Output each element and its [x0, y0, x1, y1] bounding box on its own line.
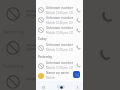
button[interactable]: Name surname	[36, 70, 83, 81]
other: Call back	[76, 8, 81, 13]
button[interactable]: Contacts	[70, 81, 84, 90]
staticText: Mobile 12:05 pm (2)	[46, 48, 73, 52]
staticText: Name surname	[46, 71, 70, 75]
staticText: Yesterday	[38, 55, 53, 59]
other: Call back	[76, 28, 81, 33]
other: Call back	[76, 45, 81, 50]
other: Call back	[76, 18, 81, 23]
button[interactable]: Unknown number	[36, 25, 83, 35]
button[interactable]: Dial pad	[73, 71, 80, 78]
staticText: Yesterday	[3, 63, 25, 69]
button[interactable]: Favourites	[36, 81, 50, 90]
staticText: Mobile 12:05 pm (2)	[46, 66, 73, 70]
other: Call back	[76, 63, 81, 68]
button[interactable]: Recents	[54, 81, 68, 90]
staticText: Mobile 12:05 pm (2)	[46, 31, 73, 35]
staticText: Unknown number	[46, 26, 74, 30]
staticText: Unknown number	[46, 61, 74, 65]
staticText: Today	[38, 37, 47, 41]
button[interactable]: Unknown number	[36, 15, 83, 25]
staticText: Mobile 12:05 pm (2)	[46, 11, 73, 15]
staticText: Mobile 12:05 pm (2)	[46, 21, 73, 25]
staticText: Unknown number	[46, 43, 74, 47]
staticText: Unknown number	[46, 16, 74, 20]
staticText: Yesterday	[3, 29, 25, 35]
staticText: Mobile	[46, 76, 55, 80]
button[interactable]: Unknown number	[36, 43, 83, 52]
button[interactable]: Unknown number	[36, 5, 83, 15]
button[interactable]: Unknown number	[36, 61, 83, 70]
staticText: Unknown number	[46, 6, 74, 10]
